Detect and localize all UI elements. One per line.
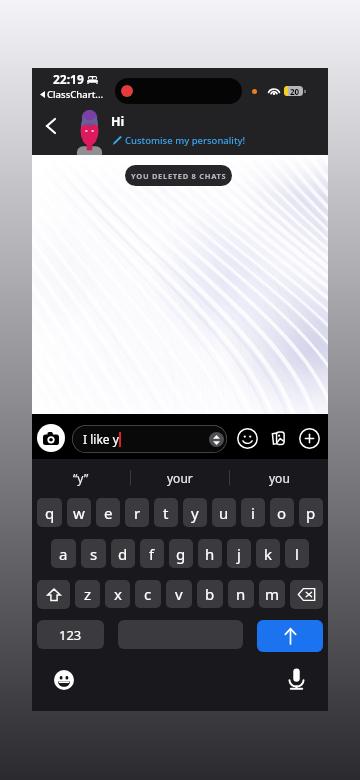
button[interactable]: Send [257, 620, 323, 652]
staticText: a [59, 544, 68, 564]
button[interactable]: w [67, 498, 91, 527]
button[interactable]: x [105, 580, 130, 608]
staticText: m [265, 584, 280, 604]
staticText: d [118, 544, 128, 564]
staticText: your [167, 470, 193, 486]
staticText: 20 [290, 86, 300, 96]
button[interactable]: Camera [37, 424, 65, 452]
button[interactable]: q [37, 498, 62, 527]
button[interactable]: p [299, 498, 323, 527]
button[interactable]: j [227, 539, 251, 568]
staticText: j [237, 544, 241, 564]
staticText: y [191, 503, 199, 523]
staticText: e [104, 503, 113, 523]
button[interactable]: Emoji [237, 428, 258, 449]
staticText: i [251, 503, 255, 523]
button[interactable]: d [111, 539, 135, 568]
staticText: q [45, 503, 55, 523]
staticText: l [295, 544, 299, 564]
button[interactable]: I like y [72, 425, 227, 453]
button[interactable]: “y” [32, 460, 130, 495]
button[interactable]: r [125, 498, 149, 527]
button[interactable]: 123 [37, 620, 104, 649]
staticText: g [176, 544, 186, 564]
button[interactable]: z [75, 580, 100, 608]
staticText: t [163, 503, 169, 523]
button[interactable]: Backspace [290, 580, 323, 609]
staticText: b [205, 584, 215, 604]
button[interactable]: a [51, 539, 76, 568]
button[interactable]: c [135, 580, 161, 608]
button[interactable]: Customise my personality! [113, 134, 246, 147]
staticText: 22:19 [53, 71, 84, 87]
button[interactable]: y [183, 498, 207, 527]
staticText: 123 [59, 626, 82, 644]
staticText: n [236, 584, 246, 604]
staticText: r [134, 503, 141, 523]
button[interactable]: u [212, 498, 236, 527]
button[interactable]: Back [34, 109, 68, 143]
staticText: o [277, 503, 287, 523]
button[interactable]: Emoji keyboard [54, 670, 74, 690]
staticText: c [144, 584, 152, 604]
staticText: p [306, 503, 316, 523]
staticText: ClassChart... [47, 88, 104, 101]
staticText: w [73, 503, 85, 523]
staticText: v [175, 584, 183, 604]
button[interactable]: m [259, 580, 285, 608]
staticText: u [219, 503, 229, 523]
staticText: you [269, 470, 290, 486]
button[interactable]: o [270, 498, 294, 527]
button[interactable]: b [197, 580, 223, 608]
staticText: Hi [111, 113, 125, 130]
button[interactable]: t [154, 498, 178, 527]
button[interactable]: Voice input [287, 667, 306, 690]
staticText: x [114, 584, 122, 604]
button[interactable]: i [241, 498, 265, 527]
button[interactable]: Expand [209, 432, 224, 447]
staticText: YOU DELETED 8 CHATS [131, 171, 227, 181]
button[interactable]: n [228, 580, 254, 608]
staticText: “y” [73, 470, 89, 486]
button[interactable]: g [169, 539, 193, 568]
button[interactable]: f [140, 539, 164, 568]
button[interactable]: l [285, 539, 309, 568]
button[interactable]: More [299, 428, 320, 449]
button[interactable]: Shift [37, 580, 70, 609]
button[interactable]: s [81, 539, 106, 568]
staticText: s [90, 544, 98, 564]
staticText: f [149, 544, 155, 564]
staticText: z [84, 584, 92, 604]
staticText: k [264, 544, 273, 564]
staticText: I like y [83, 431, 119, 447]
button[interactable]: Stickers [269, 429, 287, 447]
button[interactable]: you [230, 460, 328, 495]
button[interactable]: h [198, 539, 222, 568]
staticText: h [205, 544, 215, 564]
staticText: Customise my personality! [125, 134, 246, 147]
button[interactable]: v [166, 580, 192, 608]
button[interactable]: your [131, 460, 229, 495]
button[interactable]: e [96, 498, 120, 527]
button[interactable]: k [256, 539, 280, 568]
button[interactable]: YOU DELETED 8 CHATS [125, 165, 232, 186]
